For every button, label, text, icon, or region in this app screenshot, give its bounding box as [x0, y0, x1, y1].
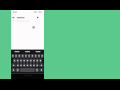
button[interactable]: Back: [12, 16, 16, 20]
button[interactable]: More options: [36, 16, 40, 20]
button[interactable]: [11, 14, 44, 22]
